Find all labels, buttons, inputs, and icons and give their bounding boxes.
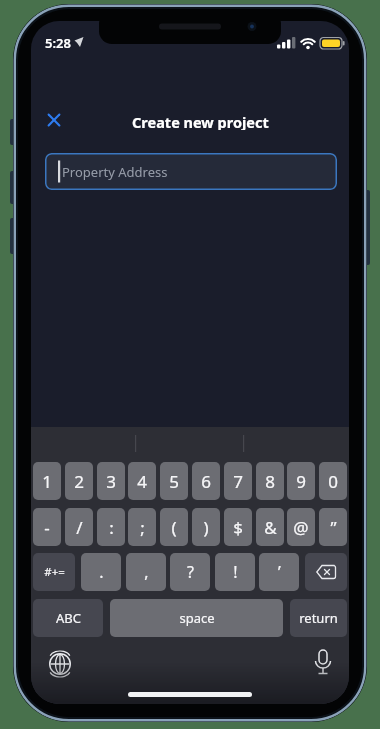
button[interactable]: 1: [33, 462, 61, 500]
button[interactable]: ): [192, 508, 220, 546]
staticText: (: [171, 516, 177, 539]
staticText: 8: [265, 470, 275, 493]
staticText: 9: [296, 470, 306, 493]
button[interactable]: [310, 648, 336, 678]
button[interactable]: 7: [224, 462, 252, 500]
button[interactable]: :: [97, 508, 125, 546]
button[interactable]: return: [290, 599, 347, 637]
staticText: 0: [328, 470, 338, 493]
button[interactable]: 2: [65, 462, 93, 500]
button[interactable]: ’: [259, 553, 299, 591]
button[interactable]: [46, 112, 62, 128]
staticText: 1: [42, 470, 52, 493]
staticText: 6: [201, 470, 211, 493]
button[interactable]: (: [160, 508, 188, 546]
staticText: ”: [330, 516, 337, 539]
staticText: ?: [187, 561, 194, 583]
button[interactable]: Property Address: [45, 153, 337, 190]
button[interactable]: [305, 553, 347, 591]
staticText: ;: [140, 516, 145, 539]
button[interactable]: $: [224, 508, 252, 546]
staticText: ,: [144, 561, 149, 583]
staticText: 2: [74, 470, 84, 493]
button[interactable]: 9: [287, 462, 315, 500]
staticText: !: [233, 561, 238, 583]
button[interactable]: 5: [160, 462, 188, 500]
staticText: 5: [169, 470, 179, 493]
staticText: -: [44, 516, 50, 539]
button[interactable]: ;: [128, 508, 156, 546]
button[interactable]: ”: [319, 508, 347, 546]
button[interactable]: ABC: [33, 599, 103, 637]
staticText: &: [264, 516, 277, 539]
staticText: Property Address: [62, 163, 168, 181]
button[interactable]: &: [256, 508, 284, 546]
staticText: :: [109, 516, 114, 539]
button[interactable]: .: [81, 553, 121, 591]
button[interactable]: 3: [97, 462, 125, 500]
staticText: #+=: [44, 564, 65, 580]
button[interactable]: ?: [170, 553, 210, 591]
staticText: .: [99, 561, 104, 583]
button[interactable]: ,: [126, 553, 166, 591]
button[interactable]: 4: [128, 462, 156, 500]
button[interactable]: !: [215, 553, 255, 591]
staticText: space: [179, 609, 215, 627]
staticText: 4: [137, 470, 147, 493]
staticText: return: [299, 609, 338, 627]
button[interactable]: [48, 652, 72, 676]
staticText: ): [203, 516, 209, 539]
staticText: Create new project: [132, 112, 269, 130]
button[interactable]: /: [65, 508, 93, 546]
staticText: ’: [278, 561, 281, 583]
staticText: ABC: [56, 609, 81, 627]
staticText: @: [293, 516, 309, 539]
staticText: 7: [233, 470, 243, 493]
staticText: /: [76, 516, 83, 539]
button[interactable]: space: [110, 599, 283, 637]
staticText: 5:28: [45, 34, 71, 52]
staticText: 3: [106, 470, 116, 493]
button[interactable]: -: [33, 508, 61, 546]
button[interactable]: 0: [319, 462, 347, 500]
button[interactable]: 8: [256, 462, 284, 500]
staticText: $: [233, 516, 243, 539]
button[interactable]: #+=: [33, 553, 75, 591]
button[interactable]: @: [287, 508, 315, 546]
button[interactable]: 6: [192, 462, 220, 500]
